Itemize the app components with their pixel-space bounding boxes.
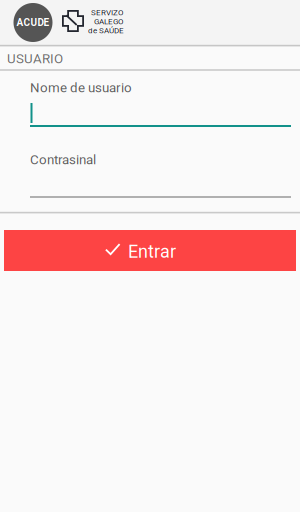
staticText: Contrasinal xyxy=(30,152,96,168)
button[interactable]: ACUDE xyxy=(13,3,52,42)
staticText: SERVIZO xyxy=(91,8,124,17)
staticText: ACUDE xyxy=(16,17,49,28)
staticText: GALEGO xyxy=(94,17,124,26)
staticText: Entrar xyxy=(128,241,176,262)
staticText: USUARIO xyxy=(7,51,63,67)
button[interactable]: Contrasinal xyxy=(30,150,293,200)
staticText: Nome de usuario xyxy=(30,80,132,96)
staticText: de SAÚDE xyxy=(88,26,124,35)
button[interactable]: Entrar xyxy=(4,230,296,271)
button[interactable]: Nome de usuario xyxy=(30,78,293,128)
